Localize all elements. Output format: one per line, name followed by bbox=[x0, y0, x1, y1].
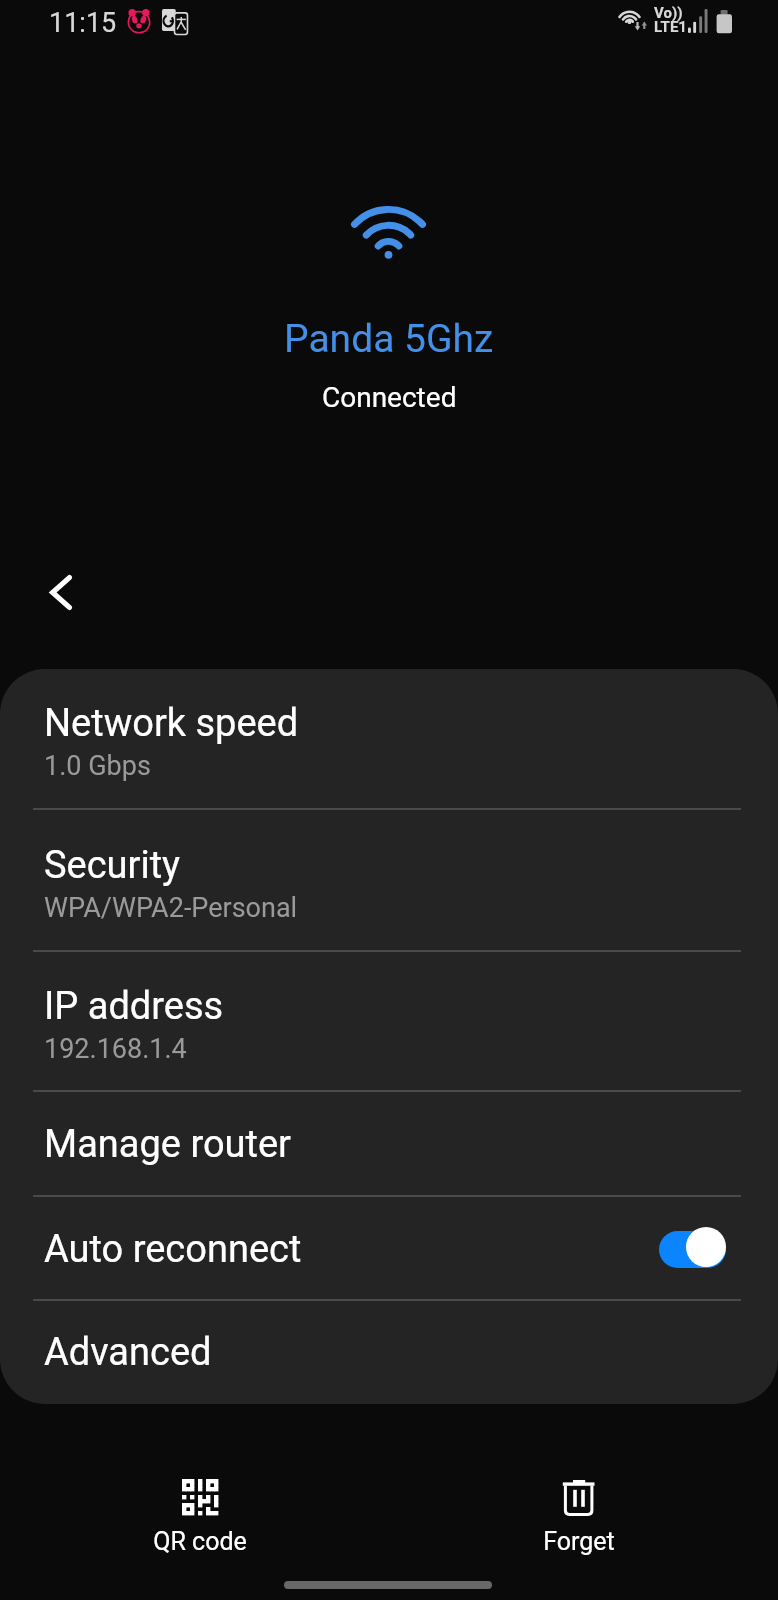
button[interactable]: IP address bbox=[0, 952, 778, 1092]
button[interactable]: Forget bbox=[389, 1455, 768, 1565]
staticText: Connected bbox=[322, 381, 457, 414]
button[interactable]: Auto reconnect bbox=[0, 1197, 778, 1301]
staticText: Advanced bbox=[44, 1330, 212, 1375]
staticText: Vo)) bbox=[654, 4, 683, 22]
staticText: Network speed bbox=[44, 701, 299, 746]
staticText: 192.168.1.4 bbox=[44, 1033, 187, 1065]
staticText: Forget bbox=[543, 1527, 615, 1556]
button[interactable]: QR code bbox=[10, 1455, 389, 1565]
button[interactable]: Network speed bbox=[0, 669, 778, 810]
staticText: LTE1 bbox=[654, 18, 687, 36]
staticText: Panda 5Ghz bbox=[284, 316, 494, 362]
staticText: Auto reconnect bbox=[44, 1227, 302, 1272]
staticText: Security bbox=[44, 843, 181, 888]
staticText: Manage router bbox=[44, 1122, 291, 1167]
staticText: IP address bbox=[44, 984, 224, 1029]
button[interactable]: Back bbox=[26, 557, 96, 627]
staticText: 11:15 bbox=[49, 7, 117, 39]
staticText: QR code bbox=[153, 1527, 247, 1556]
button[interactable]: Manage router bbox=[0, 1092, 778, 1197]
button[interactable]: Advanced bbox=[0, 1301, 778, 1404]
button[interactable]: Security bbox=[0, 810, 778, 952]
staticText: 1.0 Gbps bbox=[44, 750, 151, 782]
staticText: WPA/WPA2-Personal bbox=[44, 892, 298, 924]
